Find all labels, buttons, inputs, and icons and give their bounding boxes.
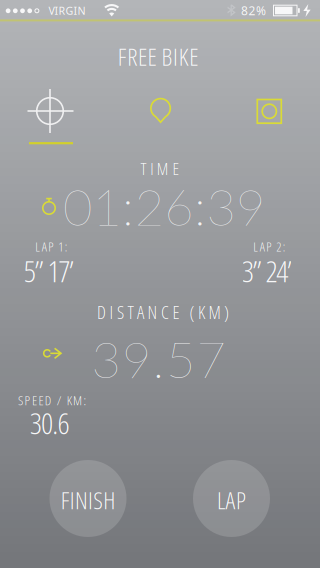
staticText: /	[57, 391, 62, 409]
staticText: H	[103, 484, 115, 516]
staticText: 5” 17’	[24, 250, 74, 291]
staticText: K	[179, 40, 189, 73]
staticText: F	[61, 484, 70, 516]
staticText: I	[109, 300, 113, 324]
staticText: E	[189, 40, 198, 73]
button[interactable]: Camera	[255, 97, 283, 125]
staticText: 1	[58, 238, 63, 255]
staticText: C	[161, 300, 169, 324]
staticText: :	[65, 238, 68, 255]
staticText: E	[138, 40, 147, 73]
staticText: E	[172, 157, 179, 180]
staticText: 2	[276, 238, 281, 255]
staticText: D	[97, 300, 106, 324]
staticText: T	[127, 300, 133, 324]
staticText: 82%	[237, 3, 270, 18]
staticText: F	[118, 40, 127, 73]
staticText: S	[18, 391, 23, 409]
staticText: S	[93, 484, 103, 516]
staticText: A	[42, 238, 47, 255]
staticText: E	[172, 300, 179, 324]
button[interactable]: Tracking	[24, 85, 76, 137]
staticText: VIRGIN	[48, 3, 85, 18]
staticText: T	[140, 157, 146, 180]
staticText: I	[88, 484, 93, 516]
staticText: E	[147, 40, 156, 73]
staticText: :	[283, 238, 286, 255]
staticText: P	[266, 238, 271, 255]
staticText: 01:26:39	[48, 176, 280, 236]
staticText: K	[67, 391, 72, 409]
staticText: L	[253, 238, 258, 255]
staticText: 39.57	[76, 328, 241, 389]
staticText: B	[162, 40, 173, 73]
staticText: L	[35, 238, 40, 255]
staticText: I	[70, 484, 75, 516]
staticText: N	[147, 300, 157, 324]
staticText: M	[208, 300, 220, 324]
staticText: :	[84, 391, 87, 409]
staticText: D	[45, 391, 52, 409]
staticText: M	[73, 391, 82, 409]
staticText: E	[32, 391, 37, 409]
staticText: K	[198, 300, 205, 324]
staticText: P	[236, 484, 246, 516]
staticText: A	[137, 300, 144, 324]
button[interactable]: F	[49, 460, 126, 537]
staticText: 30.6	[30, 402, 69, 443]
staticText: P	[24, 391, 30, 409]
staticText: P	[48, 238, 53, 255]
staticText: I	[173, 40, 178, 73]
button[interactable]: L	[193, 460, 270, 537]
staticText: R	[127, 40, 137, 73]
staticText: I	[150, 157, 153, 180]
staticText: S	[117, 300, 124, 324]
staticText: M	[157, 157, 169, 180]
staticText: L	[217, 484, 225, 516]
staticText: 3” 24’	[242, 250, 292, 291]
staticText: A	[225, 484, 235, 516]
staticText: (	[189, 300, 194, 324]
staticText: A	[260, 238, 265, 255]
staticText: E	[38, 391, 43, 409]
staticText: N	[75, 484, 88, 516]
button[interactable]: Map	[149, 96, 173, 124]
staticText: )	[224, 300, 229, 324]
